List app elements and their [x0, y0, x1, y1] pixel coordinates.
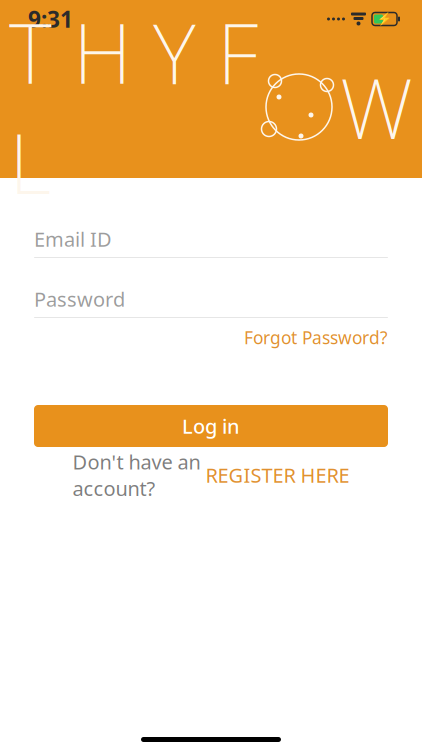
- staticText: Don't have an account?: [72, 448, 200, 502]
- button[interactable]: Log in: [34, 405, 388, 447]
- staticText: ⚡: [377, 12, 392, 26]
- staticText: Password: [34, 286, 125, 312]
- staticText: 9:31: [28, 4, 73, 34]
- button[interactable]: Forgot Password?: [244, 326, 388, 349]
- staticText: REGISTER HERE: [205, 462, 349, 488]
- button[interactable]: Don't have an account?: [34, 463, 388, 487]
- staticText: T H Y F L: [9, 0, 258, 217]
- staticText: Log in: [182, 413, 240, 439]
- staticText: Forgot Password?: [244, 326, 388, 349]
- staticText: Email ID: [34, 226, 112, 252]
- staticText: W: [340, 52, 413, 162]
